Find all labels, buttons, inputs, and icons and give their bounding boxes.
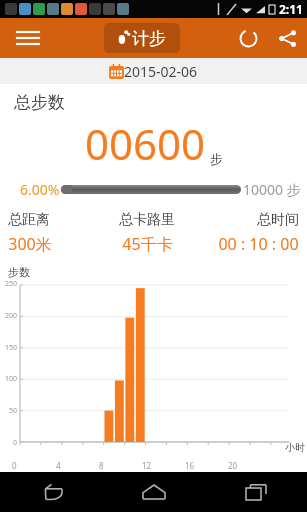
staticText: 0 (12, 460, 56, 471)
staticText: 00 : 10 : 00 (218, 233, 299, 255)
button[interactable]: 总距离 (8, 211, 101, 255)
staticText: 45千卡 (122, 233, 173, 255)
staticText: 总步数 (14, 92, 65, 113)
staticText: 300米 (8, 233, 52, 255)
button[interactable]: 计步 (104, 23, 180, 53)
staticText: 250 (0, 279, 17, 289)
staticText: 16 (185, 460, 228, 471)
staticText: 50 (0, 406, 17, 416)
button[interactable]: Share (267, 18, 307, 58)
staticText: 200 (0, 311, 17, 321)
staticText: 12 (142, 460, 185, 471)
button[interactable]: Recent apps (205, 472, 307, 512)
staticText: 步 (210, 151, 223, 167)
staticText: 150 (0, 343, 17, 353)
staticText: 2:11 (279, 1, 303, 17)
staticText: 0 (0, 438, 17, 448)
staticText: 2015-02-06 (124, 62, 198, 81)
staticText: 00600 (85, 115, 206, 172)
staticText: 小时 (285, 441, 305, 454)
button[interactable]: 总卡路里 (101, 211, 193, 255)
staticText: 4 (56, 460, 99, 471)
staticText: 6.00% (20, 180, 60, 199)
button[interactable]: Refresh (229, 18, 267, 58)
staticText: 步数 (8, 265, 30, 279)
staticText: 总时间 (257, 211, 299, 229)
staticText: 计步 (132, 28, 166, 49)
staticText: 100 (0, 374, 17, 384)
button[interactable]: Back (0, 472, 103, 512)
staticText: 8 (99, 460, 142, 471)
button[interactable]: 总时间 (193, 211, 299, 255)
staticText: 20 (228, 460, 271, 471)
button[interactable]: Home (103, 472, 205, 512)
staticText: 总卡路里 (119, 211, 175, 229)
staticText: 10000 步 (243, 180, 301, 199)
staticText: 总距离 (8, 211, 50, 229)
button[interactable]: Menu (0, 18, 56, 58)
button[interactable]: 2015-02-06 (0, 58, 307, 84)
